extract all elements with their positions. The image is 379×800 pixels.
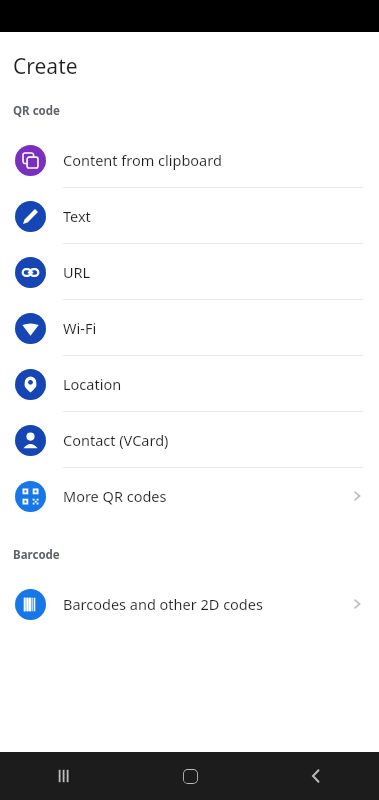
button[interactable]: Contact (VCard) — [0, 412, 379, 468]
button[interactable]: Location — [0, 356, 379, 412]
button[interactable]: Text — [0, 188, 379, 244]
button[interactable]: More QR codes — [0, 468, 379, 524]
staticText: Content from clipboard — [63, 150, 222, 170]
staticText: Wi-Fi — [63, 318, 97, 338]
button[interactable]: Content from clipboard — [0, 132, 379, 188]
button[interactable]: Barcodes and other 2D codes — [0, 576, 379, 632]
staticText: Location — [63, 374, 122, 394]
staticText: Barcodes and other 2D codes — [63, 594, 263, 614]
staticText: QR code — [13, 103, 60, 119]
staticText: Contact (VCard) — [63, 430, 169, 450]
staticText: Create — [13, 52, 78, 81]
button[interactable]: Back — [253, 752, 379, 800]
button[interactable]: Home — [127, 752, 253, 800]
staticText: More QR codes — [63, 486, 167, 506]
staticText: URL — [63, 262, 91, 282]
button[interactable]: URL — [0, 244, 379, 300]
staticText: Barcode — [13, 547, 60, 563]
button[interactable]: Recent apps — [0, 752, 127, 800]
button[interactable]: Wi-Fi — [0, 300, 379, 356]
staticText: Text — [63, 206, 91, 226]
